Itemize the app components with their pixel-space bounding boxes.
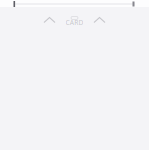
staticText: CARD — [66, 18, 83, 27]
button[interactable]: CARD — [62, 18, 87, 27]
button[interactable]: Next — [87, 17, 112, 23]
button[interactable]: Card — [62, 16, 87, 19]
button[interactable]: Previous — [37, 17, 62, 23]
